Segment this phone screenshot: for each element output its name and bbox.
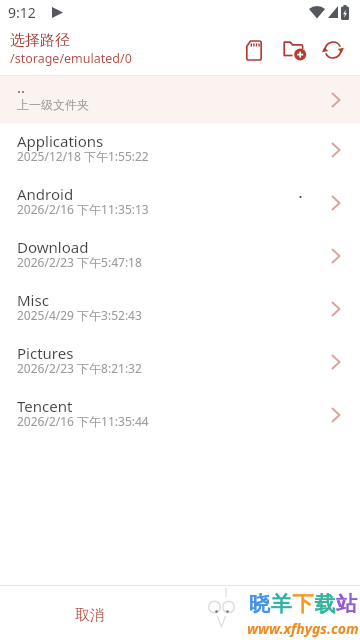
button[interactable]: Tencent	[0, 388, 360, 441]
staticText: /storage/emulated/0	[10, 50, 132, 67]
button[interactable]: 取消	[0, 586, 180, 640]
staticText: 上一级文件夹	[17, 97, 89, 112]
button[interactable]	[234, 26, 274, 74]
staticText: ..	[17, 77, 26, 97]
button[interactable]: Pictures	[0, 335, 360, 388]
staticText: 2025/4/29 下午3:52:43	[17, 307, 142, 323]
staticText: Misc	[17, 290, 49, 310]
button[interactable]	[274, 26, 313, 74]
button[interactable]: Download	[0, 229, 360, 282]
staticText: 取消	[75, 606, 105, 625]
staticText: Pictures	[17, 343, 74, 363]
staticText: 2026/2/16 下午11:35:13	[17, 201, 149, 217]
staticText: Applications	[17, 131, 104, 151]
staticText: 9:12	[8, 3, 36, 22]
button[interactable]: Applications	[0, 123, 360, 176]
staticText: 2025/12/18 下午1:55:22	[17, 148, 149, 164]
button[interactable]	[313, 26, 353, 74]
staticText: 选择路径	[10, 31, 70, 50]
staticText: 晓羊下载站	[249, 591, 359, 617]
staticText: 2026/2/23 下午8:21:32	[17, 360, 142, 376]
button[interactable]: Android	[0, 176, 360, 229]
staticText: Download	[17, 237, 89, 257]
staticText: 2026/2/23 下午5:47:18	[17, 254, 142, 270]
staticText: Tencent	[17, 396, 73, 416]
staticText: 2026/2/16 下午11:35:44	[17, 413, 149, 429]
button[interactable]: ..	[0, 76, 360, 123]
staticText: Android	[17, 184, 74, 204]
button[interactable]: Misc	[0, 282, 360, 335]
staticText: www.xfhygs.com	[247, 619, 359, 638]
